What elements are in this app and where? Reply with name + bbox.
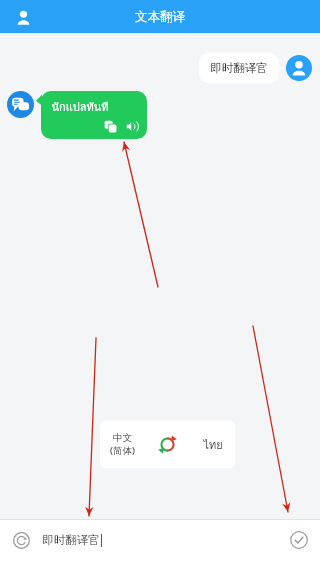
button[interactable]: นักแปลทันที [41,91,147,139]
button[interactable]: Account [10,4,36,30]
button[interactable]: Speak [126,120,139,133]
button[interactable]: ไทย [190,421,235,468]
button[interactable]: 中文 [100,421,145,468]
staticText: 即时翻译官 [210,61,268,75]
staticText: 文本翻译 [135,9,185,25]
staticText: นักแปลทันที [51,98,109,115]
staticText: ไทย [203,436,223,453]
button[interactable]: Copy [104,120,117,133]
button[interactable]: Swap languages [145,421,190,468]
staticText: 中文 [113,432,132,444]
button[interactable]: My avatar [286,55,312,81]
button[interactable]: 即时翻译官 [42,533,288,547]
button[interactable]: Undo [10,529,32,551]
staticText: (简体) [110,444,135,457]
button[interactable]: Confirm [288,529,310,551]
staticText: 即时翻译官 [42,533,100,547]
button[interactable]: Translator avatar [7,91,34,118]
button[interactable]: 即时翻译官 [199,53,279,83]
